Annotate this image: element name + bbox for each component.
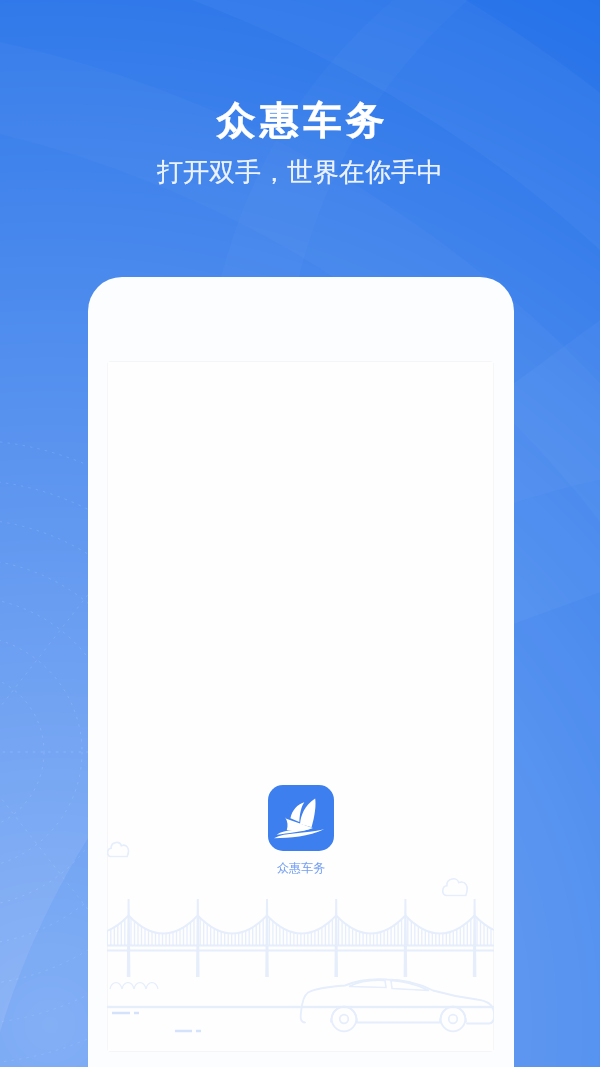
staticText: 众惠车务 <box>214 97 386 145</box>
staticText: 众惠车务 <box>277 860 325 875</box>
staticText: 打开双手，世界在你手中 <box>157 156 443 189</box>
button[interactable]: 众惠车务 应用图标 <box>268 785 334 851</box>
